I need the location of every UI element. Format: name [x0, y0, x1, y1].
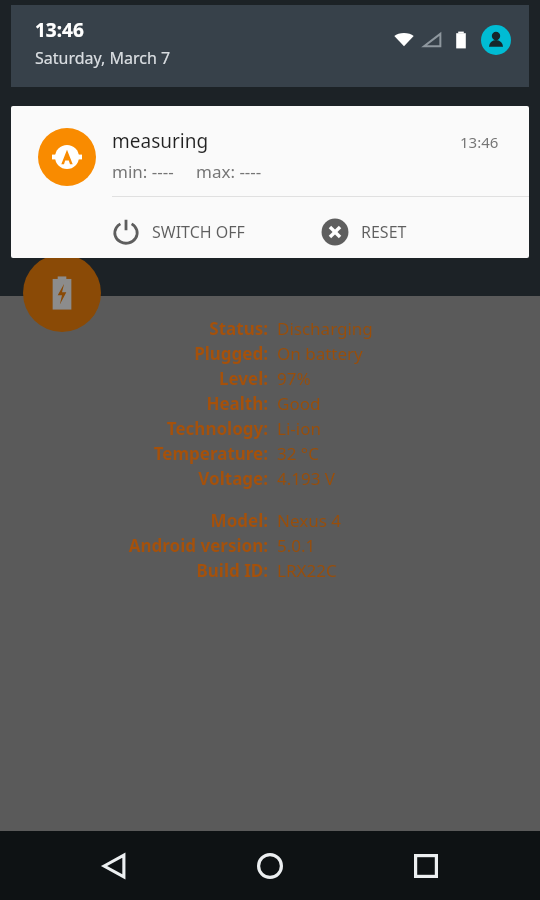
staticText: Temperature:	[153, 442, 268, 465]
staticText: 5.0.1	[277, 534, 316, 557]
staticText: RESET	[361, 221, 407, 243]
staticText: Discharging	[277, 317, 373, 340]
staticText: On battery	[277, 342, 363, 365]
staticText: measuring	[112, 128, 209, 154]
staticText: Good	[277, 392, 321, 415]
staticText: SWITCH OFF	[152, 221, 245, 243]
staticText: 13:46	[460, 132, 499, 152]
staticText: Technology:	[166, 417, 268, 440]
staticText: Voltage:	[198, 467, 268, 490]
staticText: max: ----	[196, 160, 262, 183]
staticText: Li-ion	[277, 417, 321, 440]
button[interactable]: Battery	[23, 254, 101, 332]
staticText: Saturday, March 7	[35, 47, 171, 69]
button[interactable]: Back	[84, 836, 144, 896]
staticText: 97%	[277, 367, 311, 390]
staticText: Build ID:	[196, 559, 268, 582]
staticText: Android version:	[128, 534, 268, 557]
staticText: Status:	[209, 317, 268, 340]
staticText: Plugged:	[194, 342, 268, 365]
button[interactable]: SWITCH OFF	[112, 206, 261, 258]
staticText: min: ----	[112, 160, 174, 183]
staticText: 32 °C	[277, 442, 319, 465]
staticText: Level:	[218, 367, 268, 390]
button[interactable]: RESET	[321, 206, 407, 258]
button[interactable]: User profile	[481, 25, 511, 55]
staticText: 4.193 V	[277, 467, 336, 490]
staticText: 13:46	[35, 17, 84, 43]
button[interactable]: Recent apps	[396, 836, 456, 896]
staticText: Model:	[210, 509, 268, 532]
button[interactable]: measuring	[11, 106, 529, 258]
staticText: Nexus 4	[277, 509, 341, 532]
button[interactable]: Home	[240, 836, 300, 896]
staticText: Health:	[206, 392, 268, 415]
staticText: LRX22C	[277, 559, 337, 582]
